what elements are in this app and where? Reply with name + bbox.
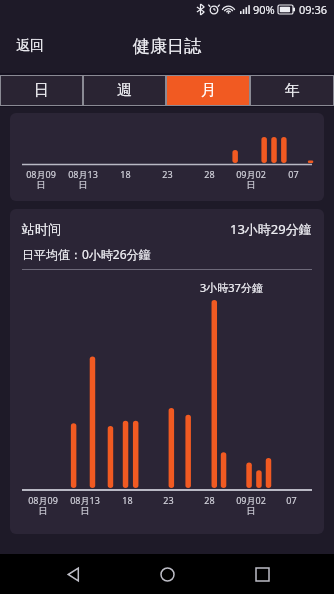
- staticText: 08月09 日: [28, 494, 58, 517]
- staticText: 13小時29分鐘: [230, 220, 312, 238]
- staticText: 09:36: [299, 2, 328, 17]
- staticText: 09月02 日: [236, 494, 266, 517]
- staticText: 18: [120, 168, 131, 180]
- staticText: 09月02 日: [236, 168, 266, 191]
- staticText: 28: [204, 494, 215, 506]
- button[interactable]: 站时间: [10, 209, 324, 534]
- button[interactable]: 日: [1, 76, 82, 105]
- staticText: 月: [201, 81, 216, 100]
- staticText: 日: [34, 81, 49, 100]
- staticText: 站时间: [22, 221, 61, 237]
- button[interactable]: 週: [84, 76, 165, 105]
- staticText: 28: [204, 168, 215, 180]
- button[interactable]: 08月09 日: [10, 113, 324, 201]
- button[interactable]: 返回: [8, 31, 52, 61]
- staticText: 08月13 日: [68, 168, 98, 191]
- staticText: 3小時37分鐘: [200, 280, 263, 294]
- staticText: 07: [286, 494, 297, 506]
- button[interactable]: Home: [145, 554, 189, 594]
- button[interactable]: Recent apps: [240, 554, 284, 594]
- staticText: 08月13 日: [70, 494, 100, 517]
- button[interactable]: 月: [167, 76, 249, 105]
- button[interactable]: Back: [51, 554, 95, 594]
- staticText: 23: [163, 494, 174, 506]
- staticText: 07: [288, 168, 299, 180]
- button[interactable]: 年: [251, 76, 333, 105]
- staticText: 年: [285, 81, 300, 100]
- staticText: 23: [162, 168, 173, 180]
- staticText: 健康日誌: [133, 36, 201, 57]
- staticText: 18: [122, 494, 133, 506]
- staticText: 週: [117, 81, 132, 100]
- staticText: 08月09 日: [26, 168, 56, 191]
- staticText: 日平均值：0小時26分鐘: [22, 246, 151, 262]
- staticText: 返回: [16, 37, 44, 55]
- staticText: 90%: [253, 2, 275, 17]
